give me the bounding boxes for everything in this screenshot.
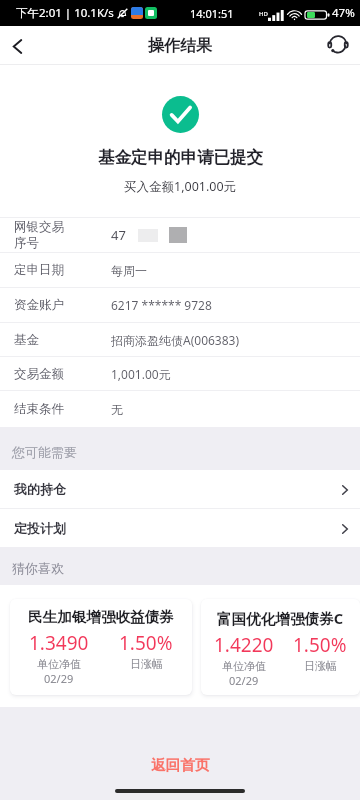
staticText: 6217 ****** 9728 bbox=[111, 297, 212, 313]
staticText: 02/29 bbox=[229, 673, 259, 688]
staticText: 1.50% bbox=[119, 630, 173, 656]
staticText: 单位净值 bbox=[37, 657, 81, 671]
staticText: 返回首页 bbox=[151, 756, 210, 774]
staticText: 47% bbox=[332, 5, 355, 21]
staticText: 基金 bbox=[14, 332, 39, 348]
staticText: 序号 bbox=[14, 235, 39, 251]
staticText: 14:01:51 bbox=[190, 6, 234, 21]
staticText: 资金账户 bbox=[14, 297, 64, 313]
staticText: 每周一 bbox=[111, 263, 147, 278]
staticText: 网银交易 bbox=[14, 219, 64, 235]
staticText: 1.3490 bbox=[29, 630, 89, 656]
staticText: 买入金额1,001.00元 bbox=[124, 178, 237, 195]
button[interactable]: 民生加银增强收益债券 bbox=[10, 599, 192, 695]
staticText: 招商添盈纯债A(006383) bbox=[111, 332, 240, 348]
staticText: 定投计划 bbox=[14, 520, 66, 536]
staticText: 1.4220 bbox=[214, 632, 274, 658]
staticText: 您可能需要 bbox=[12, 444, 77, 460]
staticText: HD bbox=[259, 10, 268, 18]
staticText: 单位净值 bbox=[222, 659, 266, 673]
staticText: 无 bbox=[111, 402, 123, 417]
button[interactable]: Customer service bbox=[316, 26, 360, 64]
staticText: 操作结果 bbox=[148, 36, 212, 56]
staticText: 02/29 bbox=[44, 671, 74, 686]
staticText: 定申日期 bbox=[14, 262, 64, 278]
button[interactable]: 返回首页 bbox=[121, 749, 240, 781]
staticText: 日涨幅 bbox=[130, 657, 163, 671]
staticText: 民生加银增强收益债券 bbox=[28, 608, 174, 626]
staticText: 日涨幅 bbox=[304, 659, 337, 673]
staticText: 我的持仓 bbox=[14, 481, 66, 497]
staticText: 1.50% bbox=[293, 632, 347, 658]
staticText: 交易金额 bbox=[14, 366, 64, 382]
staticText: 猜你喜欢 bbox=[12, 560, 64, 576]
button[interactable]: 定投计划 bbox=[0, 509, 360, 547]
staticText: 下午2:01 | 10.1K/s bbox=[16, 5, 114, 21]
staticText: 1,001.00元 bbox=[111, 366, 171, 382]
staticText: 富国优化增强债券C bbox=[217, 608, 344, 628]
button[interactable]: Back bbox=[0, 26, 34, 64]
button[interactable]: 我的持仓 bbox=[0, 470, 360, 508]
staticText: 结束条件 bbox=[14, 401, 64, 417]
staticText: 基金定申的申请已提交 bbox=[98, 147, 263, 168]
button[interactable]: 富国优化增强债券C bbox=[201, 599, 360, 695]
staticText: 47 bbox=[111, 226, 126, 244]
